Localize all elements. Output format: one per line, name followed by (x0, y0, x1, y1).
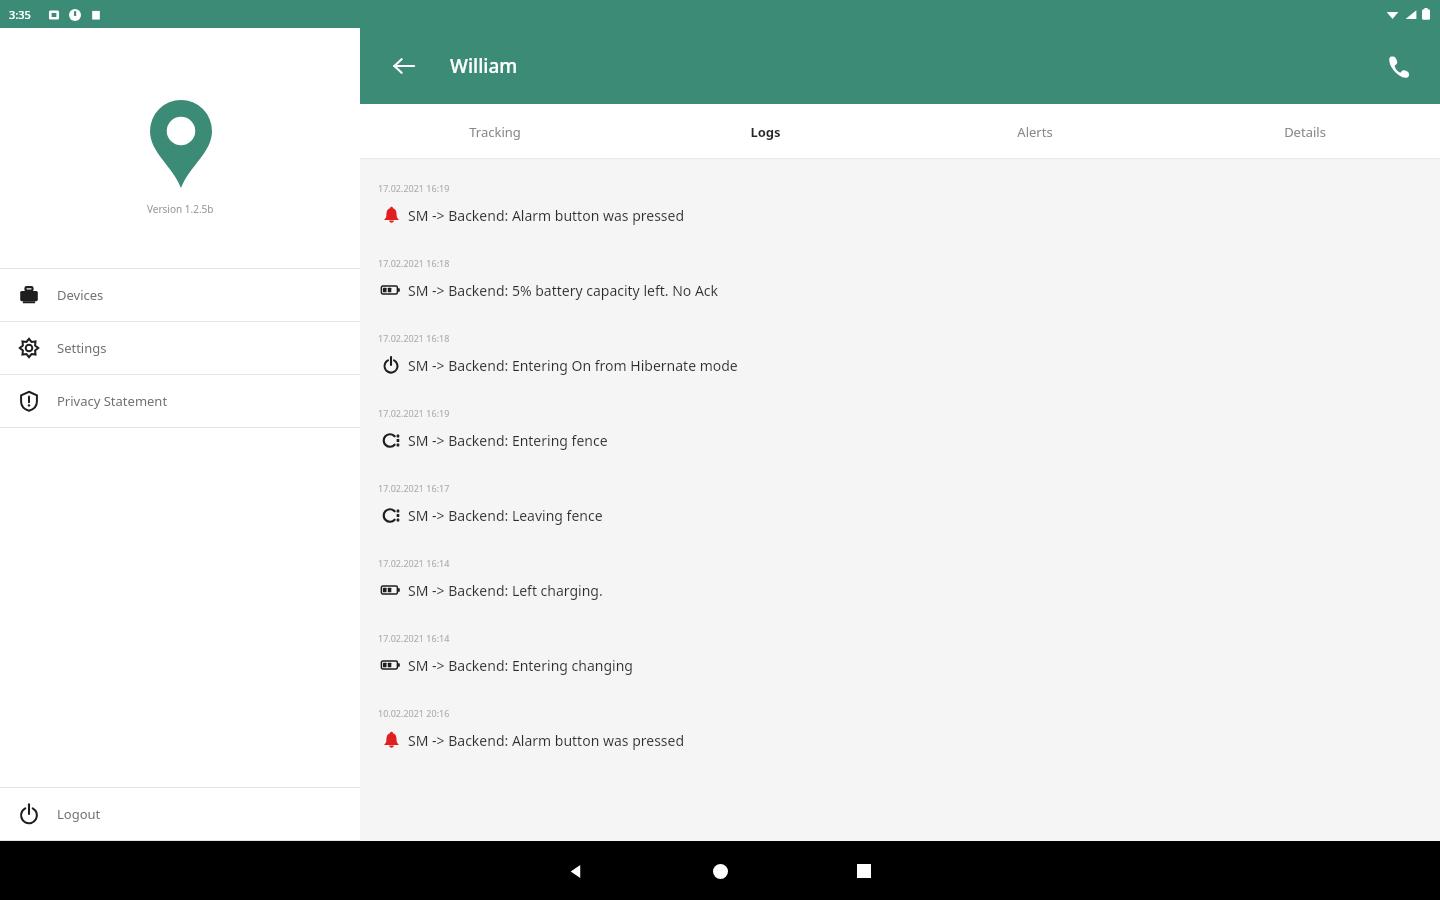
staticText: Logout (57, 805, 101, 823)
button[interactable]: 17.02.2021 16:18 (360, 327, 1440, 402)
staticText: SM -> Backend: 5% battery capacity left.… (408, 281, 719, 300)
staticText: SM -> Backend: Entering On from Hibernat… (408, 356, 738, 375)
staticText: Settings (57, 339, 107, 357)
button[interactable]: Devices (0, 269, 360, 321)
button[interactable]: Logout (0, 788, 360, 840)
staticText: SM -> Backend: Alarm button was pressed (408, 206, 685, 225)
staticText: Tracking (469, 123, 521, 141)
staticText: 10.02.2021 20:16 (378, 707, 450, 719)
staticText: William (450, 53, 518, 79)
staticText: Privacy Statement (57, 392, 168, 410)
staticText: 17.02.2021 16:17 (378, 482, 450, 494)
staticText: 17.02.2021 16:19 (378, 182, 450, 194)
staticText: SM -> Backend: Entering changing (408, 656, 633, 675)
button[interactable]: Alerts (900, 104, 1170, 159)
staticText: 17.02.2021 16:18 (378, 332, 450, 344)
staticText: Logs (750, 123, 781, 141)
button[interactable]: Back (547, 842, 605, 900)
staticText: SM -> Backend: Alarm button was pressed (408, 731, 685, 750)
button[interactable]: Back (384, 46, 424, 86)
staticText: Alerts (1017, 123, 1053, 141)
button[interactable]: Call (1378, 46, 1418, 86)
button[interactable]: Details (1170, 104, 1440, 159)
staticText: 3:35 (9, 7, 31, 22)
button[interactable]: Logs (630, 104, 900, 159)
button[interactable]: 17.02.2021 16:14 (360, 627, 1440, 702)
button[interactable]: Recent apps (835, 842, 893, 900)
button[interactable]: 17.02.2021 16:19 (360, 177, 1440, 252)
staticText: SM -> Backend: Left charging. (408, 581, 603, 600)
button[interactable]: 17.02.2021 16:17 (360, 477, 1440, 552)
button[interactable]: Home (691, 842, 749, 900)
staticText: 17.02.2021 16:14 (378, 632, 450, 644)
staticText: SM -> Backend: Entering fence (408, 431, 608, 450)
staticText: 17.02.2021 16:14 (378, 557, 450, 569)
button[interactable]: Tracking (360, 104, 630, 159)
staticText: Devices (57, 286, 104, 304)
button[interactable]: Settings (0, 322, 360, 374)
staticText: 17.02.2021 16:18 (378, 257, 450, 269)
button[interactable]: 17.02.2021 16:14 (360, 552, 1440, 627)
staticText: SM -> Backend: Leaving fence (408, 506, 603, 525)
staticText: Details (1284, 123, 1326, 141)
button[interactable]: Privacy Statement (0, 375, 360, 427)
button[interactable]: 17.02.2021 16:18 (360, 252, 1440, 327)
button[interactable]: 17.02.2021 16:19 (360, 402, 1440, 477)
staticText: Version 1.2.5b (147, 202, 214, 216)
button[interactable]: 10.02.2021 20:16 (360, 702, 1440, 777)
staticText: 17.02.2021 16:19 (378, 407, 450, 419)
